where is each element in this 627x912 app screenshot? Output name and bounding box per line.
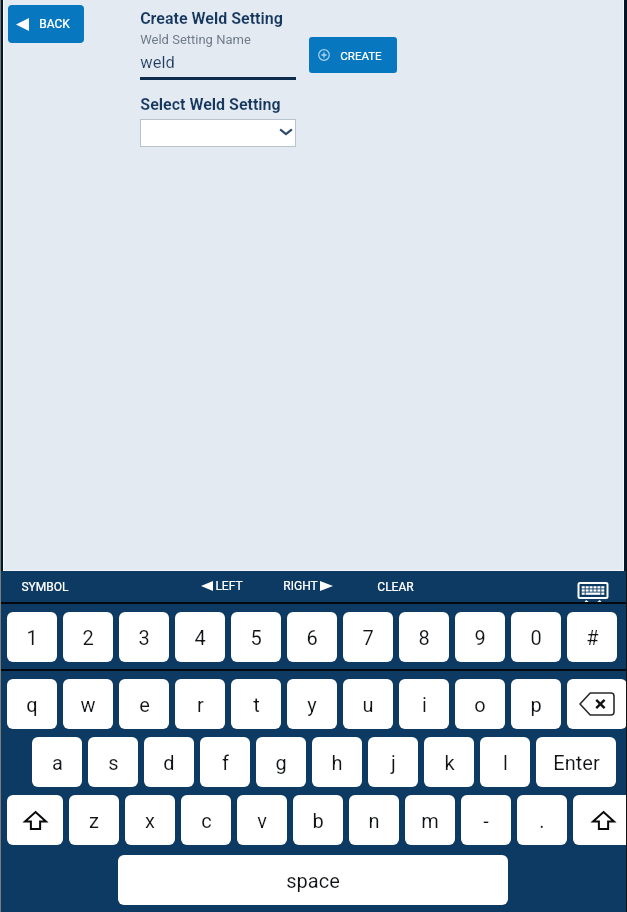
button[interactable]: p <box>511 679 561 729</box>
button[interactable]: g <box>256 737 306 787</box>
button[interactable]: n <box>349 795 399 845</box>
button[interactable]: CREATE <box>309 37 397 73</box>
button[interactable]: h <box>312 737 362 787</box>
button[interactable]: v <box>237 795 287 845</box>
staticText: CREATE <box>340 49 382 62</box>
staticText: t <box>253 693 260 716</box>
button[interactable]: CLEAR <box>364 571 426 602</box>
button[interactable]: c <box>181 795 231 845</box>
staticText: a <box>52 751 63 774</box>
button[interactable]: 2 <box>63 612 113 662</box>
button[interactable]: # <box>567 612 617 662</box>
button[interactable]: x <box>125 795 175 845</box>
button[interactable]: 9 <box>455 612 505 662</box>
staticText: l <box>503 751 508 774</box>
staticText: Weld Setting Name <box>140 32 251 47</box>
button[interactable]: m <box>405 795 455 845</box>
button[interactable]: t <box>231 679 281 729</box>
staticText: j <box>391 751 396 774</box>
staticText: 4 <box>194 626 206 649</box>
staticText: z <box>89 809 99 832</box>
button[interactable]: z <box>69 795 119 845</box>
staticText: Enter <box>553 751 600 774</box>
staticText: y <box>307 693 317 716</box>
button[interactable]: 1 <box>7 612 57 662</box>
button[interactable]: j <box>368 737 418 787</box>
staticText: e <box>139 693 150 716</box>
staticText: s <box>108 751 119 774</box>
button[interactable]: u <box>343 679 393 729</box>
staticText: c <box>201 809 212 832</box>
staticText: 9 <box>474 626 486 649</box>
staticText: w <box>80 693 96 716</box>
button[interactable]: o <box>455 679 505 729</box>
button[interactable]: space <box>118 855 508 905</box>
staticText: q <box>26 693 38 716</box>
staticText: CLEAR <box>377 580 414 594</box>
staticText: space <box>286 869 340 892</box>
button[interactable]: b <box>293 795 343 845</box>
button[interactable]: Hide keyboard <box>574 579 612 602</box>
button[interactable]: d <box>144 737 194 787</box>
button[interactable]: r <box>175 679 225 729</box>
staticText: f <box>222 751 229 774</box>
staticText: 7 <box>362 626 374 649</box>
staticText: 1 <box>26 626 38 649</box>
button[interactable]: f <box>200 737 250 787</box>
button[interactable]: 6 <box>287 612 337 662</box>
staticText: r <box>197 693 204 716</box>
button[interactable]: Shift <box>573 795 627 845</box>
button[interactable]: - <box>461 795 511 845</box>
staticText: 5 <box>250 626 262 649</box>
button[interactable]: RIGHT <box>283 576 333 596</box>
button[interactable]: Backspace <box>567 679 627 729</box>
staticText: 2 <box>82 626 94 649</box>
staticText: i <box>422 693 427 716</box>
button[interactable]: BACK <box>8 5 84 43</box>
staticText: 6 <box>306 626 318 649</box>
staticText: b <box>312 809 324 832</box>
button[interactable]: 7 <box>343 612 393 662</box>
staticText: LEFT <box>215 579 243 593</box>
button[interactable]: Enter <box>536 737 616 787</box>
button[interactable]: l <box>480 737 530 787</box>
button[interactable]: LEFT <box>201 576 243 596</box>
staticText: # <box>586 626 599 649</box>
staticText: BACK <box>39 17 70 31</box>
button[interactable]: SYMBOL <box>0 571 100 602</box>
staticText: n <box>368 809 380 832</box>
button[interactable]: e <box>119 679 169 729</box>
staticText: k <box>444 751 455 774</box>
staticText: u <box>362 693 374 716</box>
button[interactable]: 4 <box>175 612 225 662</box>
button[interactable]: s <box>88 737 138 787</box>
button[interactable]: y <box>287 679 337 729</box>
button[interactable]: 0 <box>511 612 561 662</box>
staticText: - <box>483 809 489 832</box>
button[interactable]: w <box>63 679 113 729</box>
button[interactable] <box>140 119 296 147</box>
button[interactable]: Shift <box>7 795 63 845</box>
button[interactable]: k <box>424 737 474 787</box>
staticText: 8 <box>418 626 430 649</box>
staticText: g <box>275 751 287 774</box>
staticText: . <box>539 809 545 832</box>
button[interactable]: i <box>399 679 449 729</box>
staticText: x <box>145 809 155 832</box>
staticText: Select Weld Setting <box>140 95 281 114</box>
staticText: v <box>257 809 267 832</box>
button[interactable]: 5 <box>231 612 281 662</box>
staticText: 3 <box>138 626 150 649</box>
button[interactable]: q <box>7 679 57 729</box>
button[interactable]: 3 <box>119 612 169 662</box>
button[interactable]: 8 <box>399 612 449 662</box>
staticText: m <box>421 809 439 832</box>
staticText: o <box>474 693 486 716</box>
staticText: SYMBOL <box>21 580 69 594</box>
staticText: 0 <box>530 626 542 649</box>
button[interactable]: a <box>32 737 82 787</box>
staticText: d <box>163 751 175 774</box>
staticText: weld <box>140 53 175 72</box>
staticText: h <box>331 751 343 774</box>
button[interactable]: . <box>517 795 567 845</box>
